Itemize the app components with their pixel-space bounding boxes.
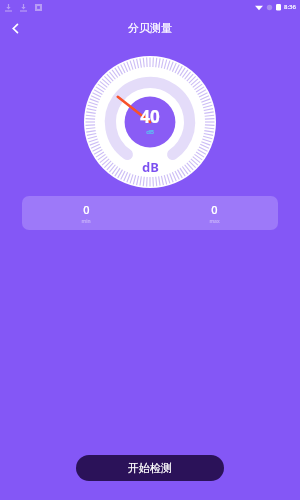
staticText: 8:36 [284, 3, 296, 11]
button[interactable]: 0 [22, 196, 278, 230]
staticText: 40 [140, 105, 160, 128]
staticText: dB [142, 158, 159, 176]
staticText: dB [146, 128, 154, 136]
staticText: 分贝测量 [128, 21, 172, 35]
button[interactable]: Back [0, 14, 30, 42]
staticText: 开始检测 [128, 461, 172, 475]
staticText: max [209, 218, 220, 225]
staticText: min [81, 218, 91, 225]
button[interactable]: 开始检测 [76, 455, 224, 481]
staticText: 0 [83, 202, 90, 217]
staticText: 0 [211, 202, 218, 217]
